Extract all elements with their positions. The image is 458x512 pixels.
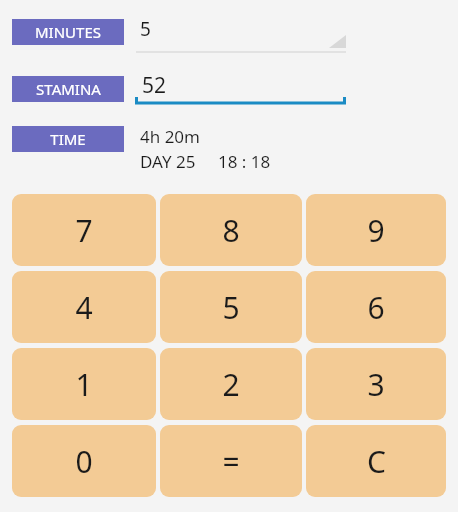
button[interactable]: 9 xyxy=(306,194,446,266)
button[interactable]: MINUTES xyxy=(12,19,124,45)
staticText: 4 xyxy=(75,287,93,328)
staticText: MINUTES xyxy=(35,22,101,42)
staticText: 2 xyxy=(222,364,240,405)
staticText: 6 xyxy=(367,287,385,328)
button[interactable]: 4 xyxy=(12,271,156,343)
staticText: 7 xyxy=(75,210,93,251)
button[interactable]: 3 xyxy=(306,348,446,420)
button[interactable]: 0 xyxy=(12,425,156,497)
staticText: = xyxy=(222,441,240,482)
staticText: 3 xyxy=(367,364,385,405)
staticText: 5 xyxy=(222,287,240,328)
button[interactable]: = xyxy=(160,425,302,497)
button[interactable]: 6 xyxy=(306,271,446,343)
button[interactable]: Minutes spinner xyxy=(136,14,346,52)
staticText: 1 xyxy=(75,364,93,405)
button[interactable]: 2 xyxy=(160,348,302,420)
button[interactable]: STAMINA xyxy=(12,76,124,102)
staticText: 18 : 18 xyxy=(218,150,271,173)
staticText: 52 xyxy=(142,71,167,100)
button[interactable]: 8 xyxy=(160,194,302,266)
staticText: 4h 20m xyxy=(140,125,200,148)
staticText: 8 xyxy=(222,210,240,251)
staticText: STAMINA xyxy=(36,79,101,99)
staticText: 5 xyxy=(140,16,151,42)
button[interactable]: 1 xyxy=(12,348,156,420)
staticText: 0 xyxy=(75,441,93,482)
button[interactable]: 5 xyxy=(160,271,302,343)
staticText: TIME xyxy=(50,129,86,149)
button[interactable]: Stamina input xyxy=(135,68,346,104)
staticText: C xyxy=(367,441,386,482)
button[interactable]: TIME xyxy=(12,126,124,152)
button[interactable]: C xyxy=(306,425,446,497)
staticText: 9 xyxy=(367,210,385,251)
staticText: DAY 25 xyxy=(140,150,196,173)
button[interactable]: 7 xyxy=(12,194,156,266)
